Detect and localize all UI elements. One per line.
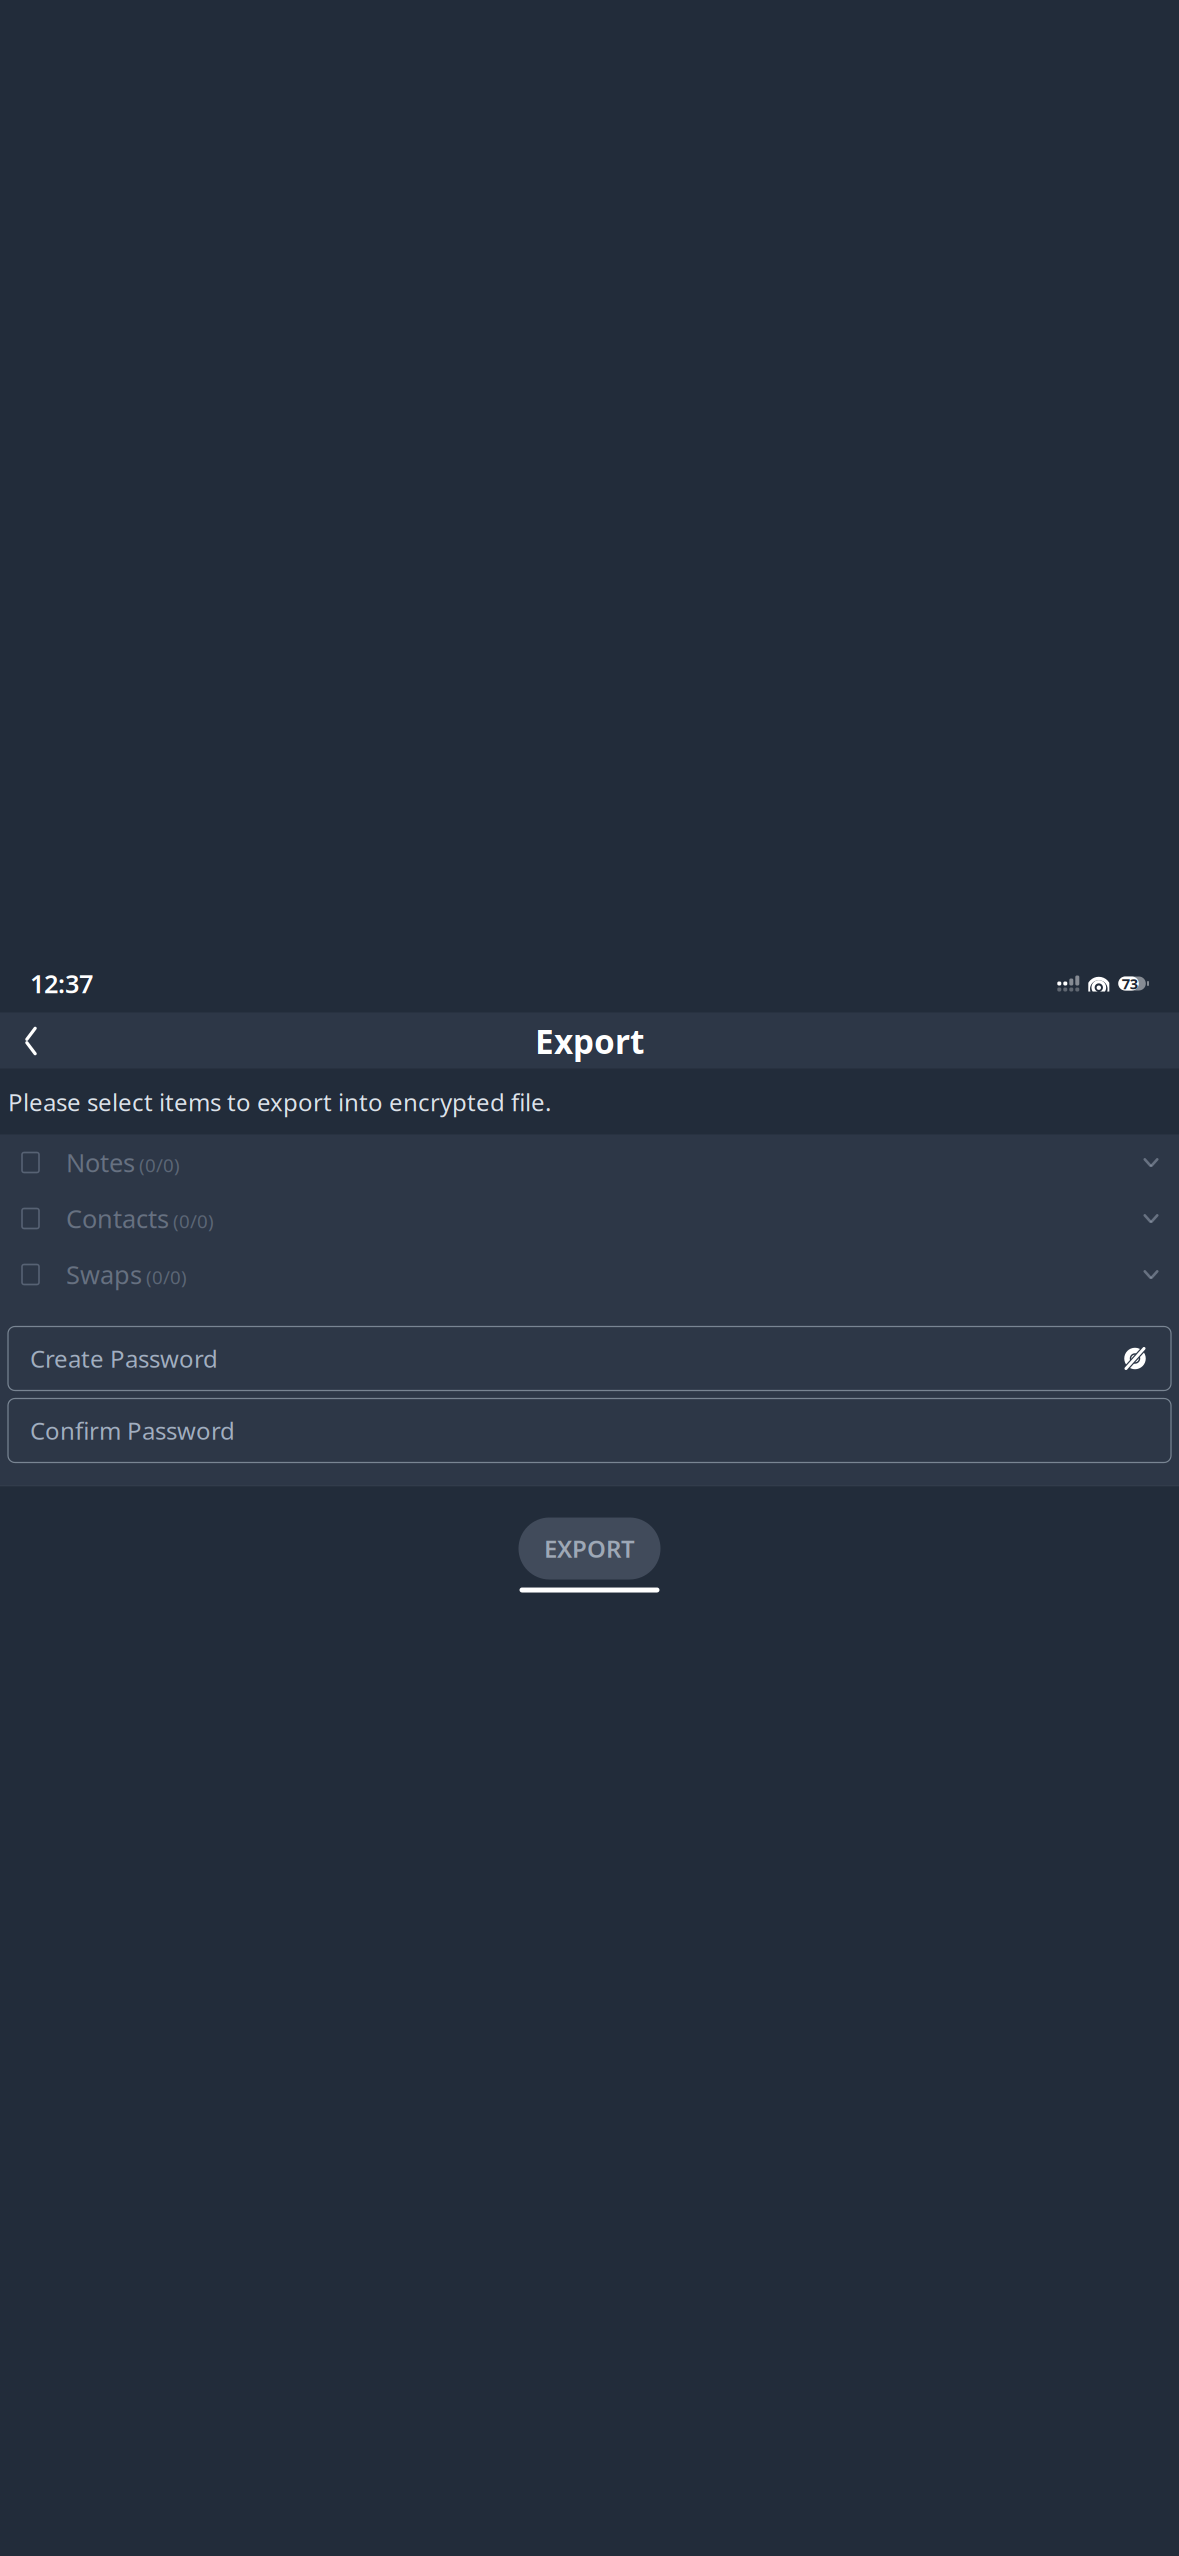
staticText: Export [535, 1019, 644, 1063]
staticText: 73 [1122, 974, 1138, 993]
staticText: Create Password [30, 1343, 218, 1374]
button[interactable]: Swaps [0, 1246, 1179, 1302]
staticText: 12:37 [30, 967, 93, 1000]
button[interactable]: Contacts [0, 1190, 1179, 1246]
staticText: Please select items to export into encry… [8, 1086, 551, 1118]
button[interactable]: Back [6, 1016, 56, 1066]
staticText: (0/0) [139, 1153, 180, 1177]
staticText: (0/0) [146, 1265, 187, 1289]
button[interactable]: Notes [0, 1134, 1179, 1190]
button[interactable]: EXPORT [518, 1517, 660, 1579]
staticText: Swaps [66, 1258, 142, 1291]
staticText: EXPORT [544, 1533, 635, 1564]
staticText: Confirm Password [30, 1415, 235, 1446]
staticText: Contacts [66, 1202, 169, 1235]
staticText: (0/0) [173, 1209, 214, 1233]
button[interactable]: Show password [1113, 1336, 1157, 1380]
staticText: Notes [66, 1146, 135, 1179]
